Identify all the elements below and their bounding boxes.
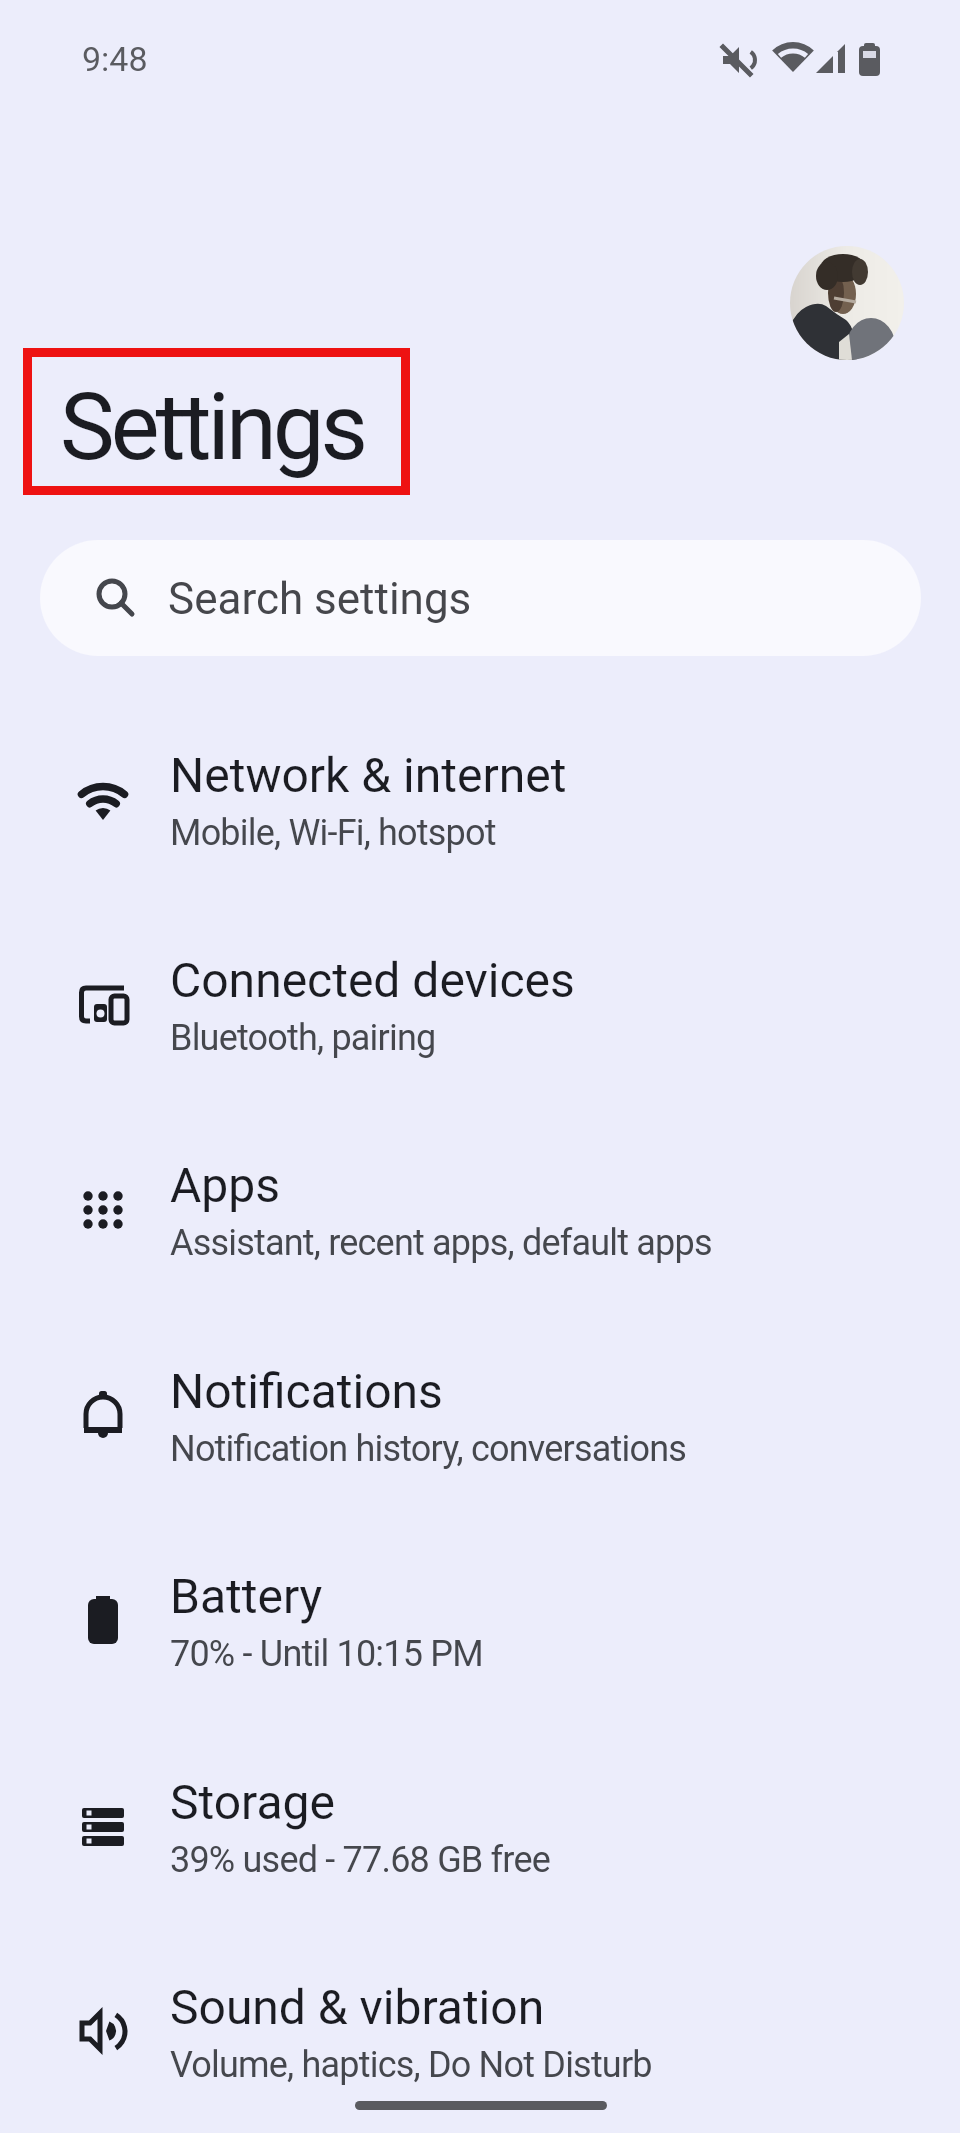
staticText: Notifications	[170, 1363, 443, 1419]
button[interactable]: Search settings	[40, 540, 921, 656]
staticText: Assistant, recent apps, default apps	[170, 1222, 712, 1264]
staticText: Mobile, Wi-Fi, hotspot	[170, 812, 496, 854]
staticText: Settings	[60, 374, 364, 482]
button[interactable]: Apps	[0, 1116, 960, 1281]
button[interactable]: Connected devices	[0, 911, 960, 1076]
staticText: Connected devices	[170, 952, 575, 1008]
staticText: Volume, haptics, Do Not Disturb	[170, 2044, 652, 2086]
button[interactable]	[790, 246, 904, 360]
button[interactable]: Storage	[0, 1733, 960, 1898]
staticText: Network & internet	[170, 747, 567, 803]
staticText: Apps	[170, 1157, 280, 1213]
staticText: 39% used - 77.68 GB free	[170, 1839, 550, 1881]
button[interactable]: Notifications	[0, 1322, 960, 1487]
staticText: Bluetooth, pairing	[170, 1017, 436, 1059]
button[interactable]: Network & internet	[0, 706, 960, 871]
staticText: 9:48	[82, 39, 148, 79]
staticText: Storage	[170, 1774, 335, 1830]
staticText: Battery	[170, 1568, 323, 1624]
button[interactable]: Battery	[0, 1527, 960, 1692]
staticText: Sound & vibration	[170, 1979, 545, 2035]
button[interactable]: Sound & vibration	[0, 1938, 960, 2103]
staticText: Search settings	[168, 573, 472, 625]
staticText: Notification history, conversations	[170, 1428, 687, 1470]
staticText: 70% - Until 10:15 PM	[170, 1633, 483, 1675]
